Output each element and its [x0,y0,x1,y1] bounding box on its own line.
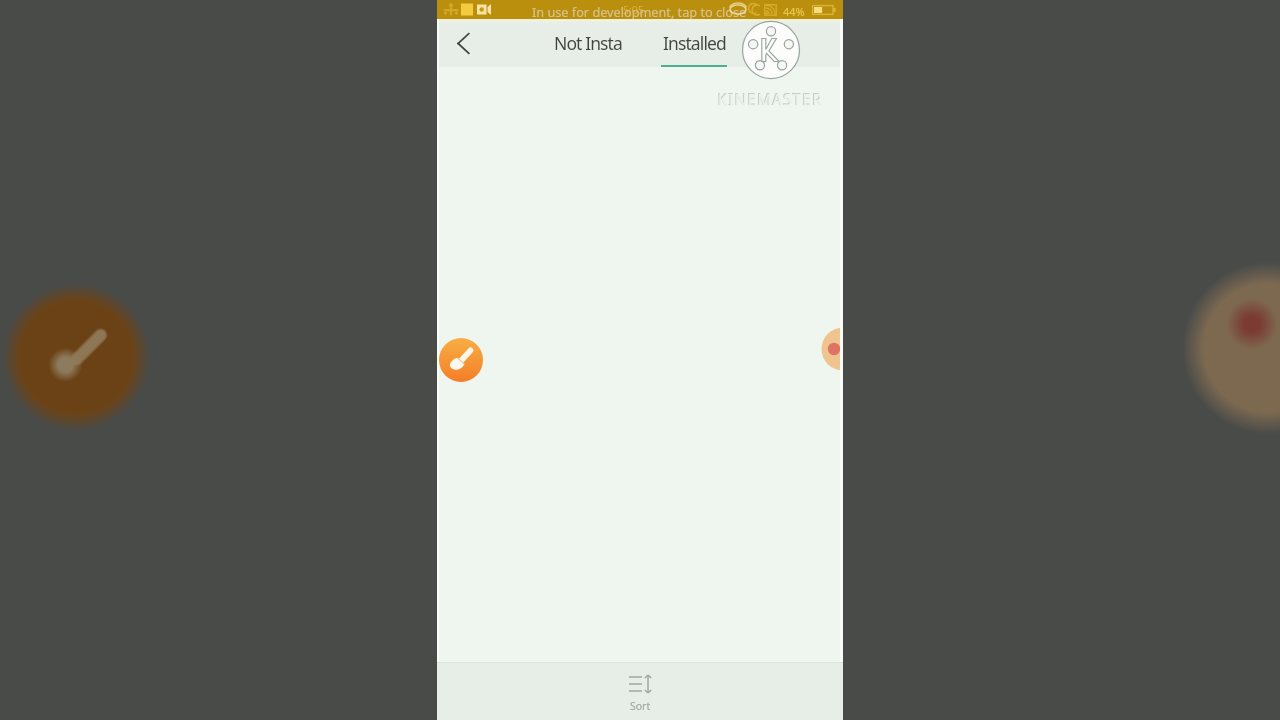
button[interactable]: Installed [652,19,736,67]
staticText: KINEMASTER [718,89,824,110]
staticText: Not Insta [554,31,622,55]
button[interactable]: Sort [580,666,700,718]
staticText: KINEMASTER [717,88,823,109]
button[interactable]: Back [439,19,485,67]
button[interactable]: Not Insta [545,19,630,67]
staticText: 44% [783,4,805,19]
staticText: 5:05 [623,3,644,17]
staticText: Installed [663,31,726,55]
staticText: Sort [630,699,651,713]
staticText: In use for development, tap to close [532,3,747,20]
